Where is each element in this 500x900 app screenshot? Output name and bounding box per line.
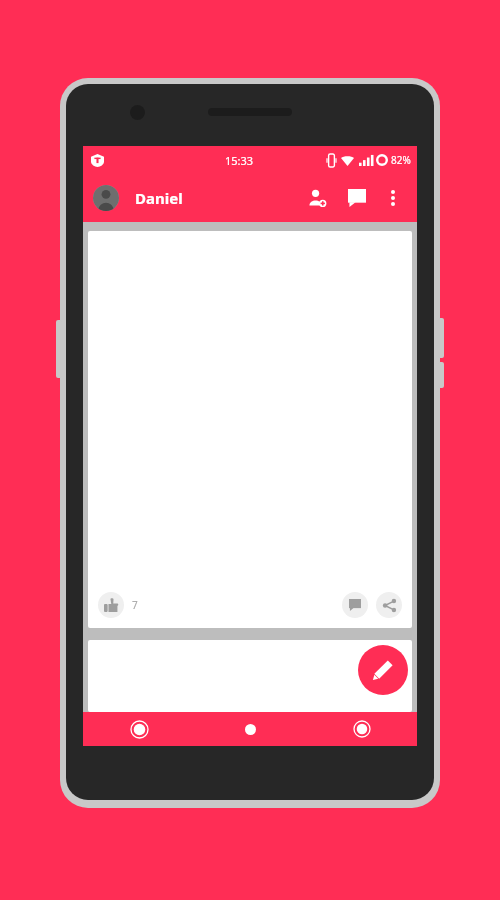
staticText: Daniel <box>135 188 301 208</box>
button[interactable]: Home <box>195 712 306 746</box>
button[interactable] <box>88 640 412 712</box>
button[interactable]: Recent apps <box>306 712 417 746</box>
staticText: 15:33 <box>225 153 254 168</box>
button[interactable]: Like <box>88 231 412 628</box>
button[interactable]: More options <box>379 184 407 212</box>
button[interactable]: Back <box>83 712 195 746</box>
staticText: 82% <box>391 153 411 167</box>
staticText: 7 <box>132 598 138 612</box>
button[interactable]: Add person <box>301 182 333 214</box>
button[interactable]: Messages <box>341 182 373 214</box>
button[interactable]: Profile avatar <box>93 185 119 211</box>
button[interactable]: Comment <box>342 592 368 618</box>
button[interactable]: Share <box>376 592 402 618</box>
button[interactable]: Like <box>98 592 124 618</box>
button[interactable]: Compose new post <box>358 645 408 695</box>
